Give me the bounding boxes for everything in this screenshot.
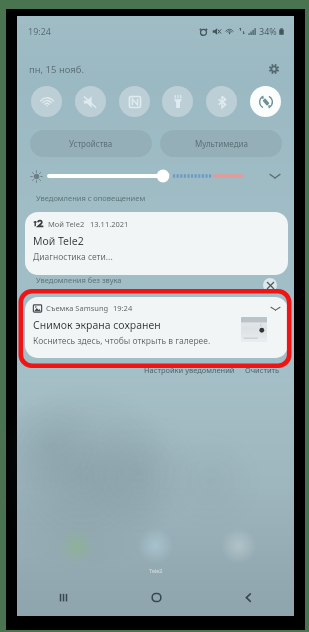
button[interactable]: Съемка Samsung <box>25 297 288 358</box>
button[interactable]: Home <box>110 582 202 612</box>
staticText: Съемка Samsung <box>46 303 109 313</box>
button[interactable]: Flashlight <box>162 86 193 117</box>
button[interactable]: Recent apps <box>17 582 110 612</box>
button[interactable]: Мой Tele2 <box>25 212 288 275</box>
button[interactable]: Expand notification <box>269 302 281 314</box>
staticText: Мой Tele2 <box>33 234 84 248</box>
button[interactable]: Wi-Fi <box>31 86 62 117</box>
staticText: 19:24 <box>28 25 52 37</box>
button[interactable]: Auto rotate <box>250 86 281 117</box>
staticText: Снимок экрана сохранен <box>33 318 161 332</box>
staticText: Уведомления без звука <box>36 275 122 285</box>
button[interactable]: Мультимедиа <box>160 130 282 157</box>
staticText: Уведомления с оповещением <box>36 193 146 203</box>
button[interactable]: Очистить <box>245 365 280 375</box>
staticText: 34% <box>259 25 277 37</box>
button[interactable]: Back <box>202 582 294 612</box>
staticText: 19:24 <box>113 303 133 313</box>
staticText: Мой Tele2 <box>48 219 85 229</box>
staticText: Мультимедиа <box>195 138 248 149</box>
button[interactable]: Expand brightness <box>267 168 283 184</box>
staticText: Устройства <box>69 138 113 149</box>
button[interactable]: Settings <box>265 60 283 78</box>
button[interactable]: Dismiss all <box>263 278 277 292</box>
button[interactable]: Настройки уведомлений <box>144 365 235 375</box>
button[interactable]: Устройства <box>30 130 152 157</box>
button[interactable]: Bluetooth <box>206 86 237 117</box>
staticText: Коснитесь здесь, чтобы открыть в галерее… <box>33 335 211 347</box>
staticText: 13.11.2021 <box>90 219 129 229</box>
button[interactable]: NFC <box>119 86 150 117</box>
button[interactable]: Sound off <box>75 86 106 117</box>
staticText: Tele2 <box>149 567 163 574</box>
staticText: Диагностика сети... <box>33 251 113 263</box>
staticText: пн, 15 нояб. <box>29 63 85 76</box>
